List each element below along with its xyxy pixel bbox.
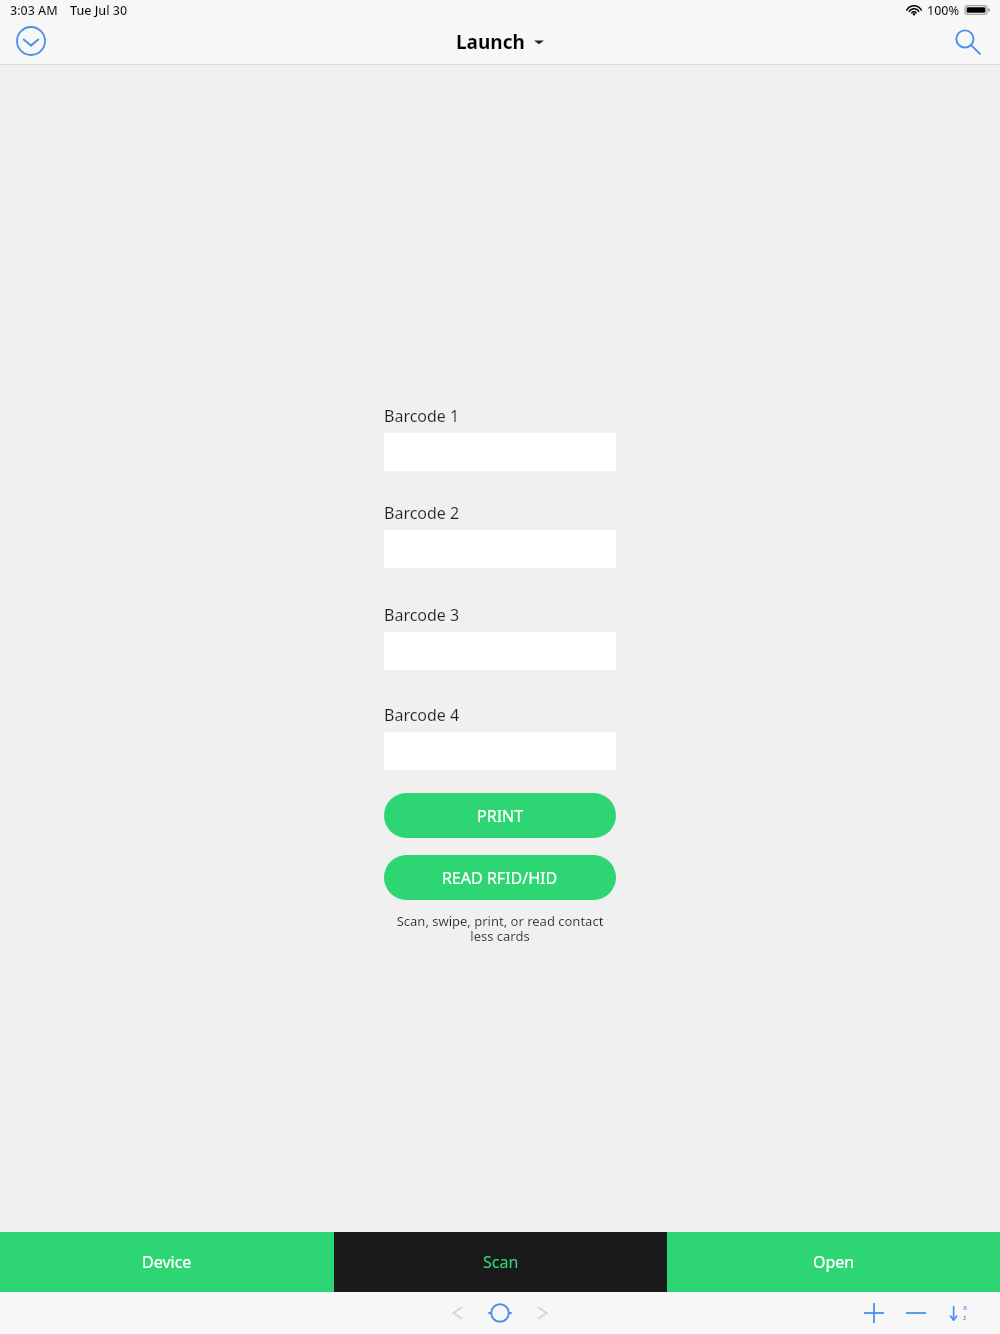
staticText: READ RFID/HID (442, 867, 558, 889)
button[interactable]: Sort (942, 1297, 974, 1329)
staticText: Barcode 4 (384, 704, 460, 726)
staticText: Tue Jul 30 (70, 2, 128, 19)
staticText: Barcode 1 (384, 405, 460, 427)
staticText: a (963, 1303, 967, 1313)
button[interactable]: Add (858, 1297, 890, 1329)
button[interactable]: Collapse (14, 24, 48, 58)
staticText: Open (813, 1251, 855, 1273)
button[interactable]: Next (527, 1296, 561, 1330)
button[interactable]: Previous (439, 1296, 473, 1330)
button[interactable]: Launch (456, 29, 544, 55)
button[interactable]: Record (483, 1296, 517, 1330)
staticText: Barcode 2 (384, 502, 460, 524)
button[interactable]: READ RFID/HID (384, 855, 616, 900)
staticText: Scan (483, 1251, 519, 1273)
button[interactable]: Remove (900, 1297, 932, 1329)
staticText: PRINT (477, 805, 524, 827)
button[interactable]: PRINT (384, 793, 616, 838)
staticText: 3:03 AM (10, 2, 58, 19)
button[interactable]: Scan (334, 1232, 667, 1292)
button[interactable]: Device (0, 1232, 334, 1292)
staticText: Launch (456, 29, 525, 55)
staticText: Device (142, 1251, 192, 1273)
staticText: 100% (927, 2, 960, 19)
button[interactable]: Search (950, 24, 984, 58)
staticText: z (963, 1313, 967, 1323)
staticText: Barcode 3 (384, 604, 460, 626)
button[interactable]: Open (667, 1232, 1000, 1292)
staticText: Scan, swipe, print, or read contact less… (384, 912, 616, 945)
